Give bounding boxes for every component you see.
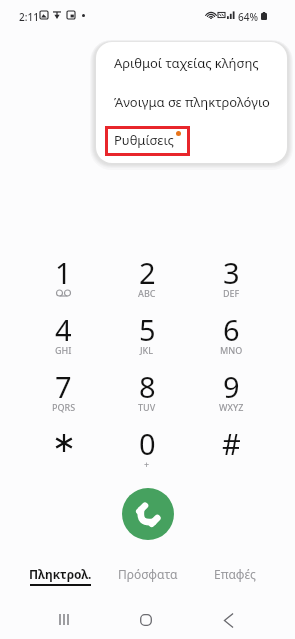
button[interactable]: 0: [105, 423, 189, 480]
staticText: PQRS: [52, 401, 76, 413]
button[interactable]: 8: [105, 366, 189, 423]
button[interactable]: 5: [105, 309, 189, 366]
staticText: 8: [139, 367, 156, 406]
button[interactable]: Home: [135, 609, 157, 631]
staticText: 2: [139, 253, 156, 292]
staticText: WXYZ: [219, 401, 244, 413]
button[interactable]: Call: [122, 488, 174, 540]
button[interactable]: Αριθμοί ταχείας κλήσης: [96, 42, 287, 83]
button[interactable]: Back: [217, 609, 239, 631]
staticText: JKL: [140, 344, 154, 356]
staticText: 2:11: [19, 10, 39, 24]
button[interactable]: 2: [105, 252, 189, 309]
staticText: 9: [223, 367, 240, 406]
staticText: 64%: [238, 10, 258, 24]
staticText: Πρόσφατα: [118, 566, 178, 582]
button[interactable]: [22, 423, 105, 480]
staticText: #: [222, 424, 241, 463]
staticText: 4: [55, 310, 72, 349]
staticText: +: [144, 458, 150, 470]
button[interactable]: 9: [189, 366, 273, 423]
staticText: 1: [55, 253, 72, 292]
staticText: Πληκτρολ.: [29, 566, 92, 582]
staticText: TUV: [138, 401, 156, 413]
button[interactable]: Ρυθμίσεις: [96, 121, 287, 159]
button[interactable]: 6: [189, 309, 273, 366]
staticText: Άνοιγμα σε πληκτρολόγιο: [114, 93, 270, 111]
staticText: 3: [223, 253, 240, 292]
button[interactable]: Επαφές: [191, 563, 278, 597]
staticText: Αριθμοί ταχείας κλήσης: [114, 54, 259, 72]
button[interactable]: #: [189, 423, 273, 480]
button[interactable]: 7: [22, 366, 105, 423]
button[interactable]: 4: [22, 309, 105, 366]
button[interactable]: Πληκτρολ.: [16, 563, 104, 597]
staticText: 7: [55, 367, 72, 406]
staticText: 6: [223, 310, 240, 349]
staticText: GHI: [55, 344, 72, 356]
button[interactable]: Πρόσφατα: [104, 563, 191, 597]
staticText: 0: [139, 424, 156, 463]
staticText: MNO: [220, 344, 243, 356]
button[interactable]: Άνοιγμα σε πληκτρολόγιο: [96, 83, 287, 121]
staticText: 5: [139, 310, 156, 349]
button[interactable]: Recents: [53, 608, 75, 630]
staticText: ABC: [138, 287, 156, 299]
staticText: Ρυθμίσεις: [114, 131, 174, 149]
button[interactable]: 1: [22, 252, 105, 309]
staticText: DEF: [223, 287, 240, 299]
staticText: Επαφές: [214, 566, 256, 582]
button[interactable]: 3: [189, 252, 273, 309]
